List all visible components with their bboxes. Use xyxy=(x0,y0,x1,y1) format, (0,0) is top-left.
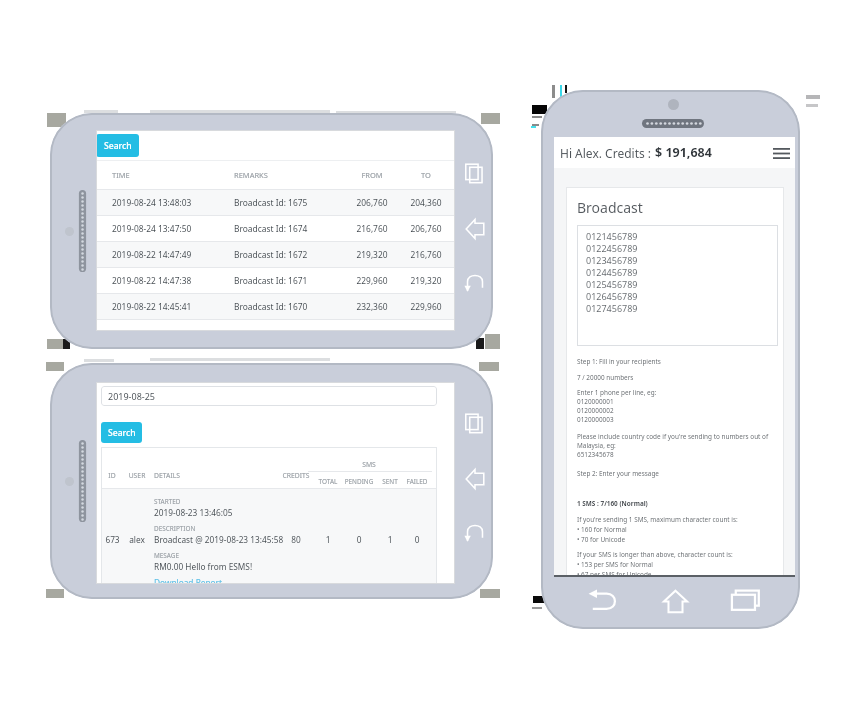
staticText: DETAILS xyxy=(154,471,180,480)
button[interactable]: Home xyxy=(458,462,492,496)
staticText: FAILED xyxy=(397,477,437,486)
staticText: If your SMS is longer than above, charac… xyxy=(577,550,733,577)
staticText: Broadcast Id: 1675 xyxy=(234,197,342,208)
staticText: 0 xyxy=(397,534,437,545)
staticText: 2019-08-24 13:48:03 xyxy=(112,197,234,208)
staticText: DESCRIPTION xyxy=(154,524,196,533)
staticText: 0125456789 xyxy=(586,278,638,290)
staticText: 216,760 xyxy=(342,223,402,234)
staticText: Broadcast xyxy=(577,198,643,217)
staticText: If you're sending 1 SMS, maximum charact… xyxy=(577,515,738,543)
button[interactable]: Recents xyxy=(458,156,492,190)
staticText: 2019-08-22 14:45:41 xyxy=(112,301,234,312)
staticText: Search xyxy=(104,140,132,152)
staticText: 0123456789 xyxy=(586,254,638,266)
staticText: 0127456789 xyxy=(586,302,638,314)
button[interactable]: Recents xyxy=(723,578,769,624)
staticText: PENDING xyxy=(339,477,379,486)
button[interactable]: 2019-08-22 14:47:49 xyxy=(96,242,455,267)
button[interactable]: 2019-08-24 13:48:03 xyxy=(96,190,455,215)
staticText: 2019-08-24 13:47:50 xyxy=(112,223,234,234)
staticText: 232,360 xyxy=(342,301,402,312)
staticText: 0126456789 xyxy=(586,290,638,302)
staticText: CREDITS xyxy=(276,471,316,480)
staticText: 219,320 xyxy=(342,249,402,260)
staticText: 1 xyxy=(308,534,348,545)
staticText: 80 xyxy=(276,534,316,545)
staticText: 0121456789 xyxy=(586,230,638,242)
staticText: 219,320 xyxy=(402,275,450,286)
staticText: SMS xyxy=(306,460,432,469)
staticText: TO xyxy=(402,170,450,180)
staticText: 2019-08-25 xyxy=(108,390,155,402)
button[interactable]: Back xyxy=(458,516,492,550)
staticText: 216,760 xyxy=(402,249,450,260)
staticText: STARTED xyxy=(154,497,181,506)
button[interactable]: Menu xyxy=(770,142,792,164)
staticText: Broadcast Id: 1674 xyxy=(234,223,342,234)
staticText: 2019-08-22 14:47:49 xyxy=(112,249,234,260)
button[interactable]: 2019-08-24 13:47:50 xyxy=(96,216,455,241)
staticText: Step 1: Fill in your recipients xyxy=(577,357,661,366)
staticText: TOTAL xyxy=(308,477,348,486)
staticText: Broadcast Id: 1672 xyxy=(234,249,342,260)
staticText: Please include country code if you're se… xyxy=(577,432,769,459)
button[interactable]: 2019-08-22 14:45:41 xyxy=(96,294,455,319)
button[interactable]: Home xyxy=(458,212,492,246)
staticText: 229,960 xyxy=(402,301,450,312)
staticText: Broadcast Id: 1671 xyxy=(234,275,342,286)
staticText: Broadcast Id: 1670 xyxy=(234,301,342,312)
button[interactable]: 2019-08-22 14:47:38 xyxy=(96,268,455,293)
staticText: 1 SMS : 7/160 (Normal) xyxy=(577,499,648,508)
button[interactable]: Search xyxy=(96,134,139,157)
button[interactable]: Home xyxy=(652,578,698,624)
staticText: Broadcast @ 2019-08-23 13:45:58 xyxy=(154,534,284,545)
staticText: 7 / 20000 numbers xyxy=(577,373,634,382)
staticText: alex xyxy=(125,534,149,545)
staticText: ID xyxy=(105,471,119,480)
staticText: 1 xyxy=(370,534,410,545)
staticText: SENT xyxy=(370,477,410,486)
button[interactable]: Recents xyxy=(458,406,492,440)
staticText: MESAGE xyxy=(154,551,180,560)
staticText: Hi Alex. Credits : xyxy=(560,145,655,161)
staticText: USER xyxy=(125,471,149,480)
staticText: 2019-08-22 14:47:38 xyxy=(112,275,234,286)
button[interactable]: 2019-08-25 xyxy=(101,386,437,406)
staticText: 2019-08-23 13:46:05 xyxy=(154,507,233,518)
staticText: RM0.00 Hello from ESMS! xyxy=(154,561,253,572)
staticText: REMARKS xyxy=(234,170,342,180)
staticText: Enter 1 phone per line, eg: 0120000001 0… xyxy=(577,388,657,424)
staticText: $ 191,684 xyxy=(655,144,712,161)
staticText: 206,760 xyxy=(402,223,450,234)
staticText: 0124456789 xyxy=(586,266,638,278)
staticText: 673 xyxy=(105,534,119,545)
staticText: 204,360 xyxy=(402,197,450,208)
staticText: 206,760 xyxy=(342,197,402,208)
staticText: Download Report xyxy=(154,577,223,584)
staticText: 229,960 xyxy=(342,275,402,286)
staticText: 0 xyxy=(339,534,379,545)
staticText: Search xyxy=(108,427,136,439)
button[interactable]: Search xyxy=(101,422,142,443)
staticText: TIME xyxy=(112,170,234,180)
button[interactable]: Back xyxy=(580,578,626,624)
staticText: Step 2: Enter your message xyxy=(577,469,659,478)
staticText: 0122456789 xyxy=(586,242,638,254)
button[interactable]: Back xyxy=(458,266,492,300)
staticText: FROM xyxy=(342,170,402,180)
button[interactable]: 673 xyxy=(101,489,437,584)
button[interactable]: 0121456789 xyxy=(577,225,778,346)
